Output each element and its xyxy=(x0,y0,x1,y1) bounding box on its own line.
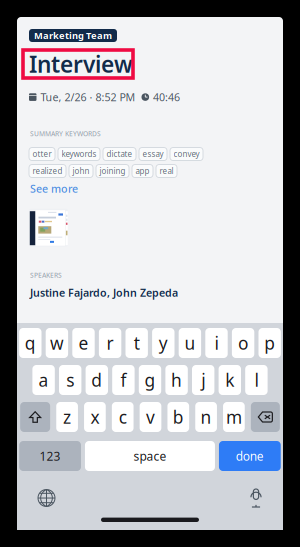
staticText: SUMMARY KEYWORDS xyxy=(30,129,101,138)
button[interactable]: z xyxy=(56,402,78,432)
staticText: r xyxy=(107,331,114,354)
button[interactable]: h xyxy=(165,365,188,395)
staticText: joining xyxy=(99,166,125,176)
button[interactable]: g xyxy=(139,365,161,395)
button[interactable]: done xyxy=(219,441,281,471)
button[interactable]: essay xyxy=(139,147,167,160)
button[interactable]: Change keyboard xyxy=(38,489,55,506)
button[interactable]: Delete xyxy=(251,402,280,432)
staticText: john xyxy=(72,166,89,176)
staticText: w xyxy=(50,331,64,354)
staticText: e xyxy=(78,331,88,354)
button[interactable]: convey xyxy=(170,147,203,160)
staticText: c xyxy=(119,405,127,428)
button[interactable]: a xyxy=(32,365,55,395)
button[interactable]: c xyxy=(112,402,133,432)
staticText: t xyxy=(134,331,140,354)
staticText: space xyxy=(133,448,166,464)
button[interactable]: k xyxy=(219,365,241,395)
button[interactable]: y xyxy=(152,328,174,358)
staticText: j xyxy=(201,368,205,391)
button[interactable]: realized xyxy=(29,164,66,177)
button[interactable]: e xyxy=(72,328,95,358)
staticText: real xyxy=(159,166,173,176)
staticText: n xyxy=(201,405,212,428)
button[interactable]: t xyxy=(125,328,148,358)
staticText: a xyxy=(39,368,49,391)
button[interactable]: q xyxy=(19,328,41,358)
button[interactable]: app xyxy=(132,164,153,177)
staticText: realized xyxy=(32,166,62,176)
button[interactable]: Shared screenshot xyxy=(29,209,68,247)
staticText: u xyxy=(184,331,195,354)
staticText: convey xyxy=(173,149,199,159)
staticText: f xyxy=(120,368,126,391)
staticText: y xyxy=(159,331,168,354)
button[interactable]: joining xyxy=(96,164,129,177)
staticText: b xyxy=(173,405,184,428)
button[interactable]: Shift xyxy=(20,402,50,432)
staticText: m xyxy=(226,405,242,428)
button[interactable]: keywords xyxy=(58,147,100,160)
staticText: essay xyxy=(142,149,163,159)
button[interactable]: real xyxy=(156,164,177,177)
staticText: x xyxy=(90,405,99,428)
staticText: Marketing Team xyxy=(34,29,112,42)
staticText: app xyxy=(135,166,149,176)
button[interactable]: v xyxy=(140,402,161,432)
button[interactable]: See more xyxy=(30,181,78,196)
staticText: i xyxy=(214,331,218,354)
staticText: z xyxy=(63,405,71,428)
staticText: l xyxy=(254,368,258,391)
staticText: v xyxy=(146,405,155,428)
staticText: q xyxy=(25,331,36,354)
button[interactable]: j xyxy=(192,365,214,395)
button[interactable]: Dictate xyxy=(250,489,262,507)
staticText: Justine Fajardo, John Zepeda xyxy=(30,285,178,300)
staticText: See more xyxy=(30,181,78,196)
button[interactable]: d xyxy=(86,365,108,395)
button[interactable]: r xyxy=(99,328,121,358)
staticText: o xyxy=(238,331,248,354)
staticText: keywords xyxy=(61,149,96,159)
staticText: h xyxy=(171,368,182,391)
button[interactable]: w xyxy=(46,328,68,358)
button[interactable]: m xyxy=(223,402,245,432)
staticText: g xyxy=(144,368,155,391)
button[interactable]: f xyxy=(112,365,135,395)
staticText: Interview xyxy=(29,49,133,79)
staticText: k xyxy=(225,368,234,391)
button[interactable]: l xyxy=(245,365,268,395)
button[interactable]: john xyxy=(69,164,93,177)
button[interactable]: Interview xyxy=(23,50,133,78)
button[interactable]: x xyxy=(84,402,106,432)
button[interactable]: Marketing Team xyxy=(29,29,117,42)
button[interactable]: 123 xyxy=(19,441,81,471)
button[interactable]: u xyxy=(179,328,201,358)
staticText: done xyxy=(236,448,264,464)
button[interactable]: dictate xyxy=(103,147,136,160)
button[interactable]: otter xyxy=(29,147,55,160)
button[interactable]: s xyxy=(59,365,81,395)
staticText: 123 xyxy=(40,448,61,464)
staticText: otter xyxy=(32,149,51,159)
staticText: d xyxy=(91,368,102,391)
staticText: 40:46 xyxy=(153,90,180,104)
staticText: SPEAKERS xyxy=(30,271,62,280)
button[interactable]: space xyxy=(85,441,215,471)
staticText: Tue, 2/26 · 8:52 PM xyxy=(40,90,135,104)
staticText: p xyxy=(264,331,275,354)
button[interactable]: i xyxy=(205,328,228,358)
button[interactable]: o xyxy=(232,328,254,358)
staticText: dictate xyxy=(106,149,132,159)
button[interactable]: b xyxy=(167,402,189,432)
staticText: s xyxy=(66,368,74,391)
button[interactable]: n xyxy=(195,402,217,432)
button[interactable]: p xyxy=(258,328,281,358)
